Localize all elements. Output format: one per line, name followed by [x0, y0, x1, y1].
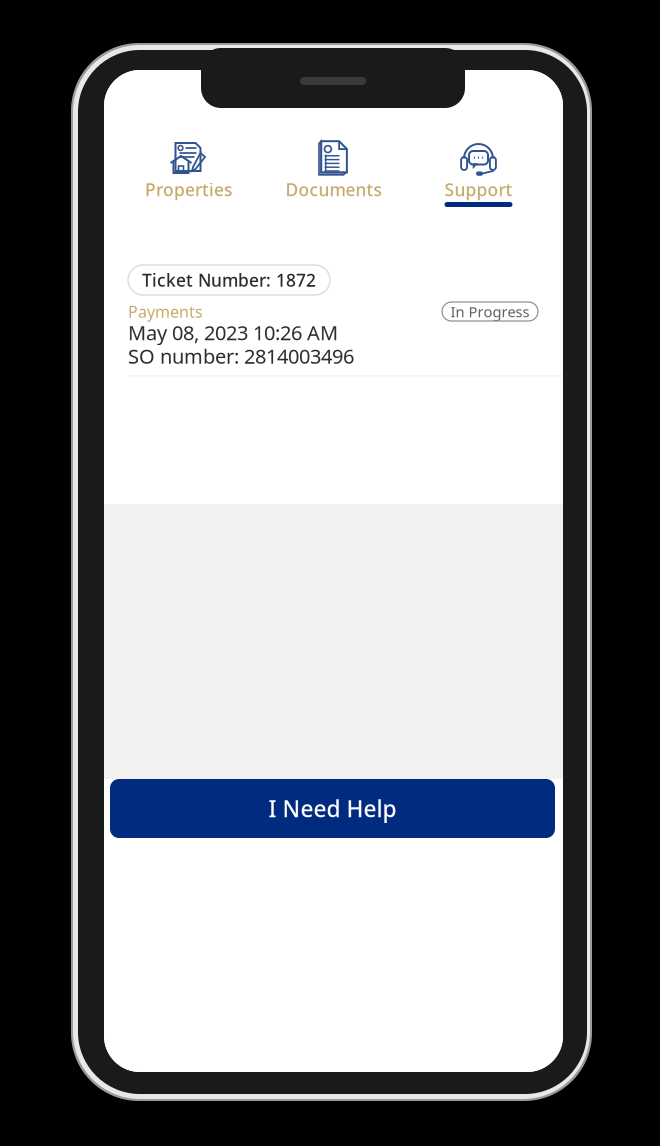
staticText: May 08, 2023 10:26 AM [128, 319, 338, 346]
staticText: In Progress [450, 302, 529, 321]
staticText: Properties [145, 178, 232, 201]
button[interactable]: Documents [261, 139, 406, 207]
staticText: I Need Help [268, 793, 396, 823]
button[interactable]: Ticket Number: 1872 [104, 265, 563, 376]
button[interactable]: Properties [116, 139, 261, 207]
button[interactable]: I Need Help [110, 779, 555, 838]
button[interactable]: Support [406, 139, 551, 207]
staticText: Documents [285, 178, 381, 201]
staticText: Ticket Number: 1872 [142, 268, 316, 291]
staticText: SO number: 2814003496 [128, 343, 354, 369]
staticText: Payments [128, 301, 203, 322]
staticText: Support [444, 178, 512, 201]
